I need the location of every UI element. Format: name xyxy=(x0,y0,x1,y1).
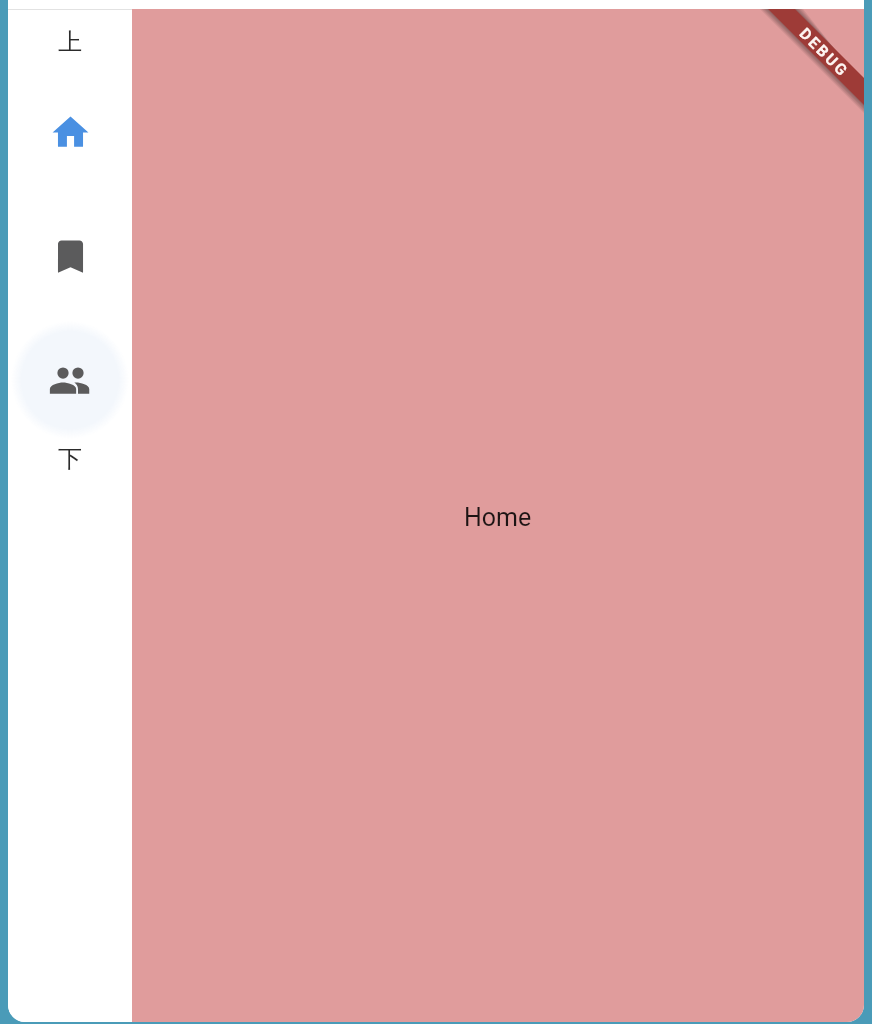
button[interactable]: Bookmarks xyxy=(8,235,132,278)
staticText: DEBUG xyxy=(796,25,852,81)
button[interactable]: Home xyxy=(8,111,132,154)
button[interactable]: People xyxy=(8,321,132,439)
staticText: 上 xyxy=(58,27,82,57)
button[interactable]: 上 xyxy=(8,21,132,63)
button[interactable]: 下 xyxy=(8,438,132,480)
staticText: Home xyxy=(464,503,532,532)
staticText: 下 xyxy=(58,444,82,474)
